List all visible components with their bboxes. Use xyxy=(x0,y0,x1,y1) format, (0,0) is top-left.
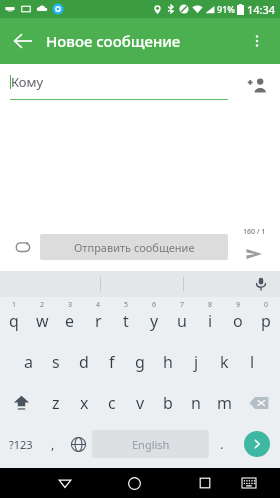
staticText: Отправить сообщение xyxy=(74,240,195,255)
staticText: d xyxy=(79,351,89,373)
staticText: . xyxy=(220,435,224,453)
button[interactable]: Change language xyxy=(64,423,92,465)
button[interactable]: Back xyxy=(0,18,46,64)
button[interactable]: . xyxy=(209,423,234,465)
button[interactable]: v xyxy=(126,382,154,423)
button[interactable]: Кому xyxy=(10,73,228,100)
staticText: y xyxy=(150,310,159,332)
staticText: 4 xyxy=(96,300,101,310)
button[interactable]: Voice input xyxy=(250,273,272,295)
button[interactable]: Shift xyxy=(0,382,42,423)
button[interactable]: k xyxy=(210,341,238,382)
button[interactable]: 5 xyxy=(112,297,140,341)
staticText: p xyxy=(261,310,271,332)
button[interactable]: h xyxy=(154,341,182,382)
button[interactable]: Send xyxy=(234,423,280,465)
staticText: z xyxy=(52,392,60,414)
button[interactable]: English xyxy=(92,430,209,458)
button[interactable]: Отправить сообщение xyxy=(40,234,228,260)
staticText: f xyxy=(109,351,115,373)
button[interactable]: ?123 xyxy=(0,423,41,465)
staticText: 3 xyxy=(68,300,73,310)
button[interactable]: l xyxy=(238,341,266,382)
button[interactable]: n xyxy=(182,382,210,423)
staticText: q xyxy=(9,310,19,332)
button[interactable]: 6 xyxy=(140,297,168,341)
button[interactable]: 2 xyxy=(28,297,56,341)
staticText: English xyxy=(132,437,170,452)
button[interactable]: Hide keyboard xyxy=(230,468,267,498)
staticText: i xyxy=(208,310,213,332)
staticText: , xyxy=(51,435,55,453)
staticText: h xyxy=(163,351,173,373)
button[interactable]: 1 xyxy=(0,297,28,341)
staticText: 0 xyxy=(264,300,269,310)
button[interactable]: s xyxy=(42,341,70,382)
button[interactable]: 0 xyxy=(252,297,280,341)
staticText: w xyxy=(36,310,49,332)
staticText: c xyxy=(108,392,116,414)
staticText: Новое сообщение xyxy=(46,31,181,51)
button[interactable]: g xyxy=(126,341,154,382)
staticText: 9 xyxy=(236,300,241,310)
staticText: x xyxy=(80,392,89,414)
button[interactable]: x xyxy=(70,382,98,423)
button[interactable]: Send xyxy=(234,227,274,267)
button[interactable]: Recent apps xyxy=(186,468,223,498)
staticText: a xyxy=(24,351,33,373)
staticText: 2 xyxy=(40,300,45,310)
staticText: 8 xyxy=(208,300,213,310)
button[interactable]: j xyxy=(182,341,210,382)
button[interactable]: 3 xyxy=(56,297,84,341)
staticText: 6 xyxy=(152,300,157,310)
button[interactable]: Backspace xyxy=(238,382,280,423)
staticText: e xyxy=(65,310,75,332)
staticText: 7 xyxy=(180,300,185,310)
staticText: l xyxy=(250,351,255,373)
button[interactable]: , xyxy=(41,423,64,465)
button[interactable]: d xyxy=(70,341,98,382)
button[interactable]: c xyxy=(98,382,126,423)
button[interactable]: Back xyxy=(47,468,83,498)
button[interactable]: Attach xyxy=(6,230,40,264)
staticText: t xyxy=(123,310,129,332)
button[interactable]: f xyxy=(98,341,126,382)
button[interactable]: 4 xyxy=(84,297,112,341)
staticText: ?123 xyxy=(9,437,33,452)
staticText: Кому xyxy=(11,73,44,91)
staticText: 5 xyxy=(124,300,129,310)
staticText: u xyxy=(177,310,187,332)
button[interactable]: Home xyxy=(116,468,153,498)
button[interactable]: Add contact xyxy=(240,69,274,103)
staticText: j xyxy=(194,351,199,373)
button[interactable]: z xyxy=(42,382,70,423)
staticText: b xyxy=(163,392,173,414)
staticText: m xyxy=(217,392,232,414)
staticText: v xyxy=(136,392,145,414)
staticText: r xyxy=(95,310,102,332)
button[interactable]: m xyxy=(210,382,238,423)
button[interactable]: 7 xyxy=(168,297,196,341)
staticText: g xyxy=(135,351,145,373)
staticText: o xyxy=(233,310,243,332)
button[interactable]: 9 xyxy=(224,297,252,341)
staticText: 91% xyxy=(217,3,235,15)
button[interactable]: a xyxy=(14,341,42,382)
staticText: k xyxy=(220,351,229,373)
staticText: s xyxy=(52,351,60,373)
button[interactable]: More options xyxy=(234,18,280,64)
staticText: 160 / 1 xyxy=(243,227,266,237)
button[interactable]: 8 xyxy=(196,297,224,341)
staticText: n xyxy=(191,392,201,414)
staticText: 1 xyxy=(12,300,17,310)
button[interactable]: b xyxy=(154,382,182,423)
staticText: 14:34 xyxy=(247,2,276,17)
